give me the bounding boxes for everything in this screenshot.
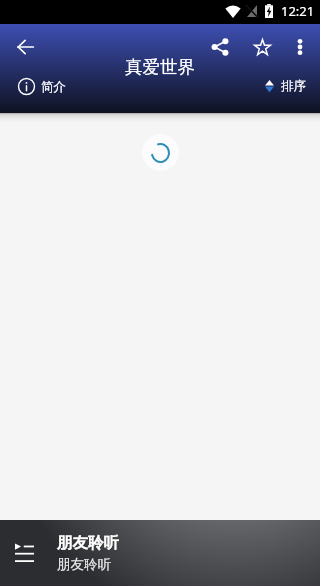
staticText: 12:21 [281,2,315,20]
staticText: 真爱世界 [125,56,195,78]
button[interactable]: Favorite [243,28,281,66]
button[interactable]: Share [201,28,239,66]
button[interactable]: 简介 [15,73,69,100]
staticText: 简介 [41,79,66,95]
button[interactable]: 排序 [262,73,309,99]
staticText: 排序 [281,78,306,94]
button[interactable]: 朋友聆听 [0,520,320,586]
button[interactable]: More options [282,29,318,65]
staticText: 朋友聆听 [57,533,119,553]
button[interactable]: Back [7,29,43,65]
staticText: 朋友聆听 [57,556,111,573]
